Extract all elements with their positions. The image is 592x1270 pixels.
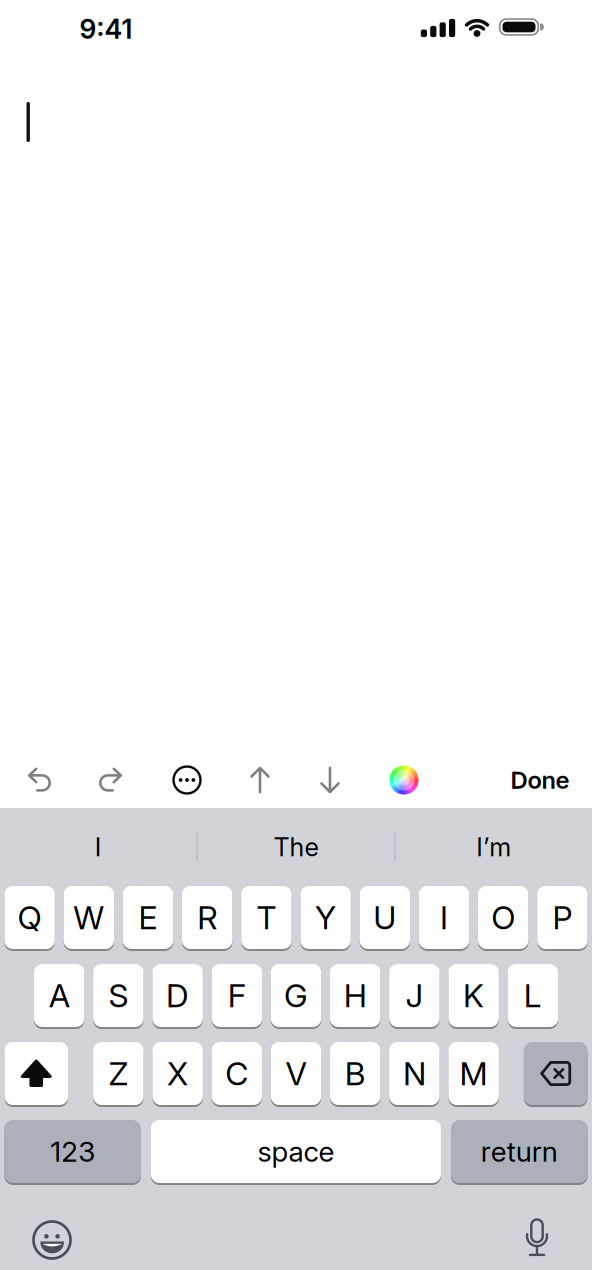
staticText: D [166, 977, 189, 1014]
button[interactable]: Color [389, 765, 418, 794]
button[interactable]: space [151, 1120, 441, 1183]
staticText: L [524, 977, 542, 1014]
button[interactable]: Z [93, 1042, 144, 1105]
button[interactable]: Dictation [524, 1218, 550, 1257]
staticText: M [460, 1055, 488, 1092]
button[interactable]: H [330, 964, 380, 1027]
button[interactable]: V [271, 1042, 321, 1105]
button[interactable]: Undo [25, 768, 53, 792]
button[interactable]: N [389, 1042, 440, 1105]
button[interactable]: E [123, 886, 173, 949]
button[interactable]: A [34, 964, 84, 1027]
staticText: 9:41 [79, 13, 132, 45]
button[interactable]: I [419, 886, 469, 949]
staticText: V [285, 1055, 306, 1092]
staticText: C [225, 1055, 248, 1092]
button[interactable]: Shift [4, 1042, 68, 1105]
button[interactable]: I’m [395, 808, 592, 886]
button[interactable]: Done [510, 766, 569, 794]
button[interactable]: K [448, 964, 499, 1027]
button[interactable]: B [330, 1042, 380, 1105]
staticText: Y [315, 899, 336, 936]
staticText: B [345, 1055, 366, 1092]
staticText: F [228, 977, 246, 1014]
button[interactable]: S [93, 964, 144, 1027]
staticText: U [373, 899, 396, 936]
button[interactable]: W [64, 886, 114, 949]
staticText: return [481, 1135, 558, 1168]
staticText: I [95, 832, 102, 862]
button[interactable]: L [508, 964, 558, 1027]
button[interactable]: C [212, 1042, 262, 1105]
staticText: The [273, 832, 318, 862]
staticText: R [197, 899, 217, 936]
button[interactable]: D [152, 964, 203, 1027]
staticText: O [491, 899, 515, 936]
button[interactable]: The [198, 808, 394, 886]
button[interactable]: Move down [320, 767, 340, 793]
button[interactable]: 123 [4, 1120, 141, 1183]
button[interactable]: return [451, 1120, 587, 1183]
staticText: 123 [50, 1135, 95, 1168]
staticText: E [138, 899, 157, 936]
button[interactable]: R [182, 886, 232, 949]
button[interactable]: Y [300, 886, 351, 949]
staticText: Z [108, 1055, 128, 1092]
button[interactable]: Delete [524, 1042, 588, 1105]
staticText: J [405, 977, 423, 1014]
staticText: A [49, 977, 70, 1014]
staticText: space [257, 1135, 334, 1168]
button[interactable]: T [241, 886, 292, 949]
button[interactable]: More [173, 766, 201, 794]
staticText: K [463, 977, 484, 1014]
staticText: Done [510, 766, 569, 794]
staticText: Q [18, 899, 42, 936]
button[interactable]: P [537, 886, 588, 949]
staticText: X [167, 1055, 188, 1092]
staticText: I’m [476, 832, 511, 862]
button[interactable]: M [448, 1042, 499, 1105]
staticText: P [552, 899, 572, 936]
staticText: W [73, 899, 104, 936]
staticText: N [403, 1055, 426, 1092]
button[interactable]: F [212, 964, 262, 1027]
button[interactable]: I [0, 808, 196, 886]
staticText: H [344, 977, 367, 1014]
button[interactable]: J [389, 964, 440, 1027]
staticText: S [108, 977, 128, 1014]
button[interactable]: Redo [97, 768, 125, 792]
button[interactable]: G [271, 964, 321, 1027]
button[interactable]: Move up [250, 767, 270, 793]
button[interactable]: O [478, 886, 528, 949]
button[interactable]: U [360, 886, 410, 949]
staticText: I [440, 899, 448, 936]
button[interactable]: X [152, 1042, 203, 1105]
staticText: T [256, 899, 276, 936]
staticText: G [284, 977, 308, 1014]
button[interactable]: Emoji [33, 1221, 70, 1258]
button[interactable]: Q [4, 886, 55, 949]
